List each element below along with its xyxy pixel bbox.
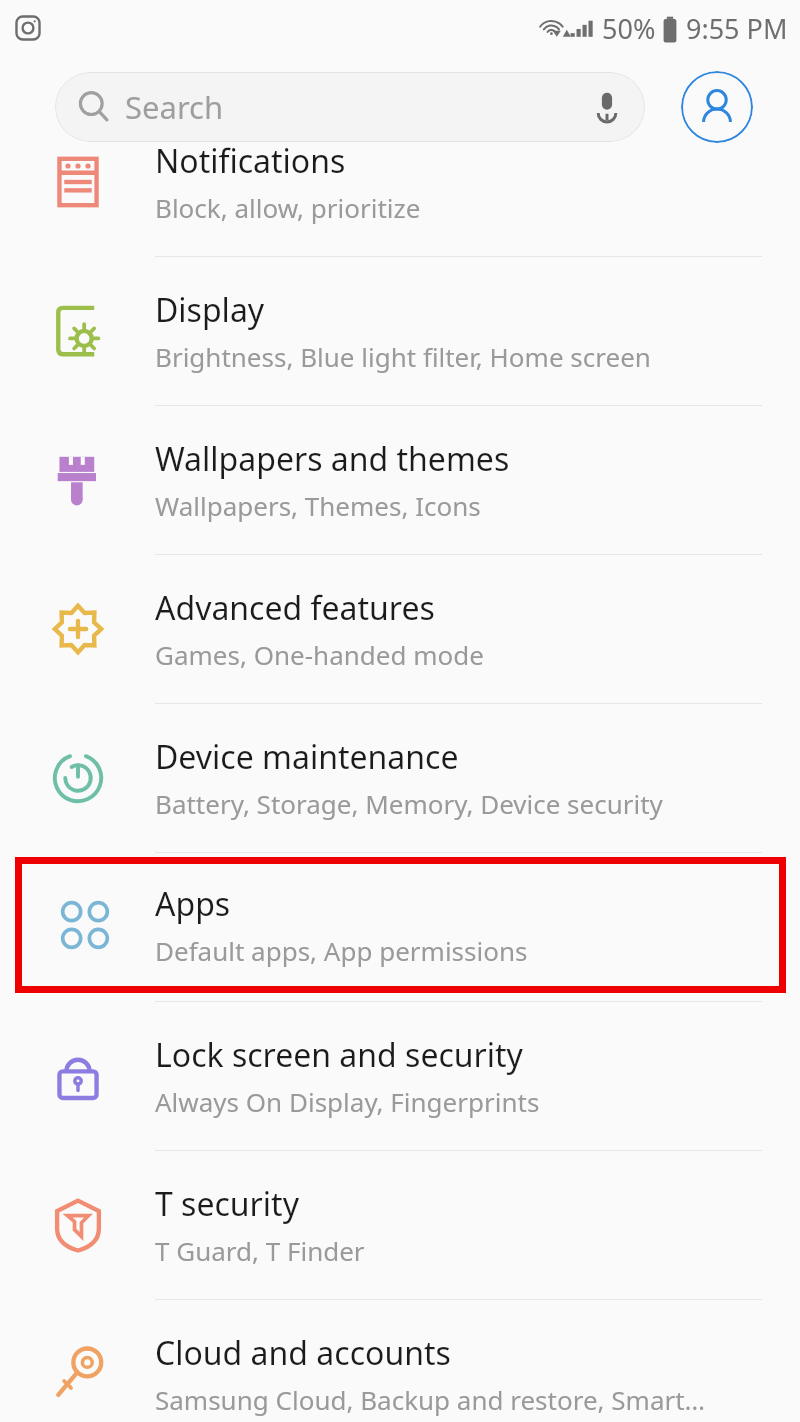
button[interactable]: Cloud and accounts — [0, 1299, 800, 1422]
staticText: Display — [155, 288, 265, 332]
staticText: Cloud and accounts — [155, 1331, 451, 1375]
button[interactable]: Voice search — [579, 79, 635, 135]
staticText: Search — [125, 86, 224, 128]
staticText: Apps — [155, 884, 231, 928]
staticText: Games, One-handed mode — [155, 637, 484, 672]
button[interactable]: Notifications — [0, 107, 800, 256]
staticText: T Guard, T Finder — [155, 1233, 365, 1268]
staticText: 50% — [602, 10, 656, 47]
button[interactable]: Device maintenance — [0, 703, 800, 852]
button[interactable]: Apps — [15, 857, 786, 993]
staticText: 9:55 PM — [686, 10, 788, 47]
staticText: Samsung Cloud, Backup and restore, Smart… — [155, 1382, 706, 1417]
staticText: Default apps, App permissions — [155, 935, 528, 970]
staticText: Apps — [155, 882, 231, 926]
button[interactable]: Account — [681, 71, 753, 143]
button[interactable]: Search — [55, 72, 645, 142]
button[interactable]: Advanced features — [0, 554, 800, 703]
staticText: Default apps, App permissions — [155, 933, 528, 968]
staticText: Always On Display, Fingerprints — [155, 1084, 540, 1119]
staticText: Wallpapers and themes — [155, 437, 510, 481]
staticText: Wallpapers, Themes, Icons — [155, 488, 481, 523]
button[interactable]: Display — [0, 256, 800, 405]
staticText: Lock screen and security — [155, 1033, 523, 1077]
button[interactable]: Wallpapers and themes — [0, 405, 800, 554]
staticText: Battery, Storage, Memory, Device securit… — [155, 786, 663, 821]
button[interactable]: Apps — [0, 852, 800, 1001]
staticText: Block, allow, prioritize — [155, 190, 421, 225]
staticText: Advanced features — [155, 586, 435, 630]
staticText: Notifications — [155, 139, 346, 183]
button[interactable]: Lock screen and security — [0, 1001, 800, 1150]
staticText: T security — [155, 1182, 299, 1226]
staticText: Brightness, Blue light filter, Home scre… — [155, 339, 651, 374]
button[interactable]: T security — [0, 1150, 800, 1299]
staticText: Device maintenance — [155, 735, 459, 779]
